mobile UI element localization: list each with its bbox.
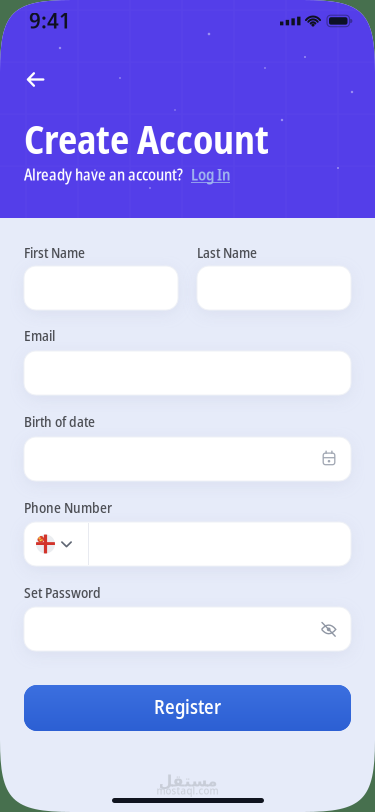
button[interactable]: Show password	[314, 614, 344, 644]
button[interactable]: Birth of date	[24, 437, 351, 481]
button[interactable]: Select country code	[24, 522, 88, 566]
staticText: Phone Number	[24, 497, 112, 517]
staticText: First Name	[24, 242, 85, 262]
button[interactable]: Back	[13, 57, 57, 101]
button[interactable]: Log In	[191, 163, 230, 185]
button[interactable]: Register	[24, 685, 351, 731]
button[interactable]: First Name	[24, 266, 178, 310]
staticText: Last Name	[197, 242, 257, 262]
button[interactable]: Select date	[314, 443, 344, 473]
button[interactable]: Phone Number	[24, 522, 351, 566]
staticText: Already have an account?	[24, 163, 183, 185]
staticText: 9:41	[29, 5, 71, 35]
button[interactable]: Last Name	[197, 266, 351, 310]
staticText: Set Password	[24, 582, 101, 602]
staticText: mostaql.com	[156, 784, 218, 797]
staticText: Log In	[191, 163, 230, 185]
staticText: Birth of date	[24, 411, 95, 431]
staticText: Register	[154, 693, 221, 720]
staticText: Email	[24, 325, 55, 345]
staticText: مستقل	[158, 772, 217, 790]
staticText: Create Account	[24, 112, 269, 166]
button[interactable]: Set Password	[24, 607, 351, 651]
